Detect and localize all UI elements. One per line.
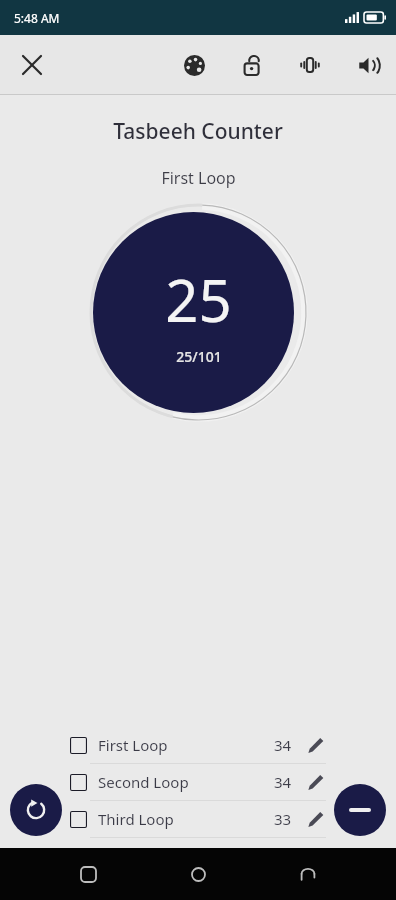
button[interactable]: Reset counter — [10, 784, 62, 836]
staticText: 34 — [274, 735, 292, 755]
button[interactable]: Home — [176, 852, 220, 896]
button[interactable]: Increment tasbeeh counter — [87, 201, 310, 424]
button[interactable]: First Loop — [70, 727, 326, 763]
staticText: 34 — [274, 772, 292, 792]
button[interactable]: Decrease count — [334, 784, 386, 836]
staticText: First Loop — [161, 167, 236, 189]
button[interactable]: Recents — [66, 852, 110, 896]
button[interactable]: Close — [10, 43, 54, 87]
staticText: 25 — [165, 260, 232, 339]
button[interactable]: Edit First Loop — [304, 734, 326, 756]
button[interactable]: Edit Second Loop — [304, 771, 326, 793]
staticText: Third Loop — [98, 809, 174, 829]
staticText: Tasbeeh Counter — [113, 117, 283, 146]
staticText: 5:48 AM — [14, 10, 60, 26]
staticText: First Loop — [98, 735, 168, 755]
staticText: 25/101 — [176, 347, 222, 366]
staticText: 33 — [274, 809, 292, 829]
button[interactable]: Theme — [174, 45, 214, 85]
button[interactable]: Edit Third Loop — [304, 808, 326, 830]
button[interactable]: Second Loop — [70, 764, 326, 800]
button[interactable]: Back — [286, 852, 330, 896]
staticText: Second Loop — [98, 772, 189, 792]
button[interactable]: Lock screen — [232, 45, 272, 85]
button[interactable]: Vibration — [290, 45, 330, 85]
button[interactable]: Sound — [348, 45, 388, 85]
button[interactable]: Third Loop — [70, 801, 326, 837]
